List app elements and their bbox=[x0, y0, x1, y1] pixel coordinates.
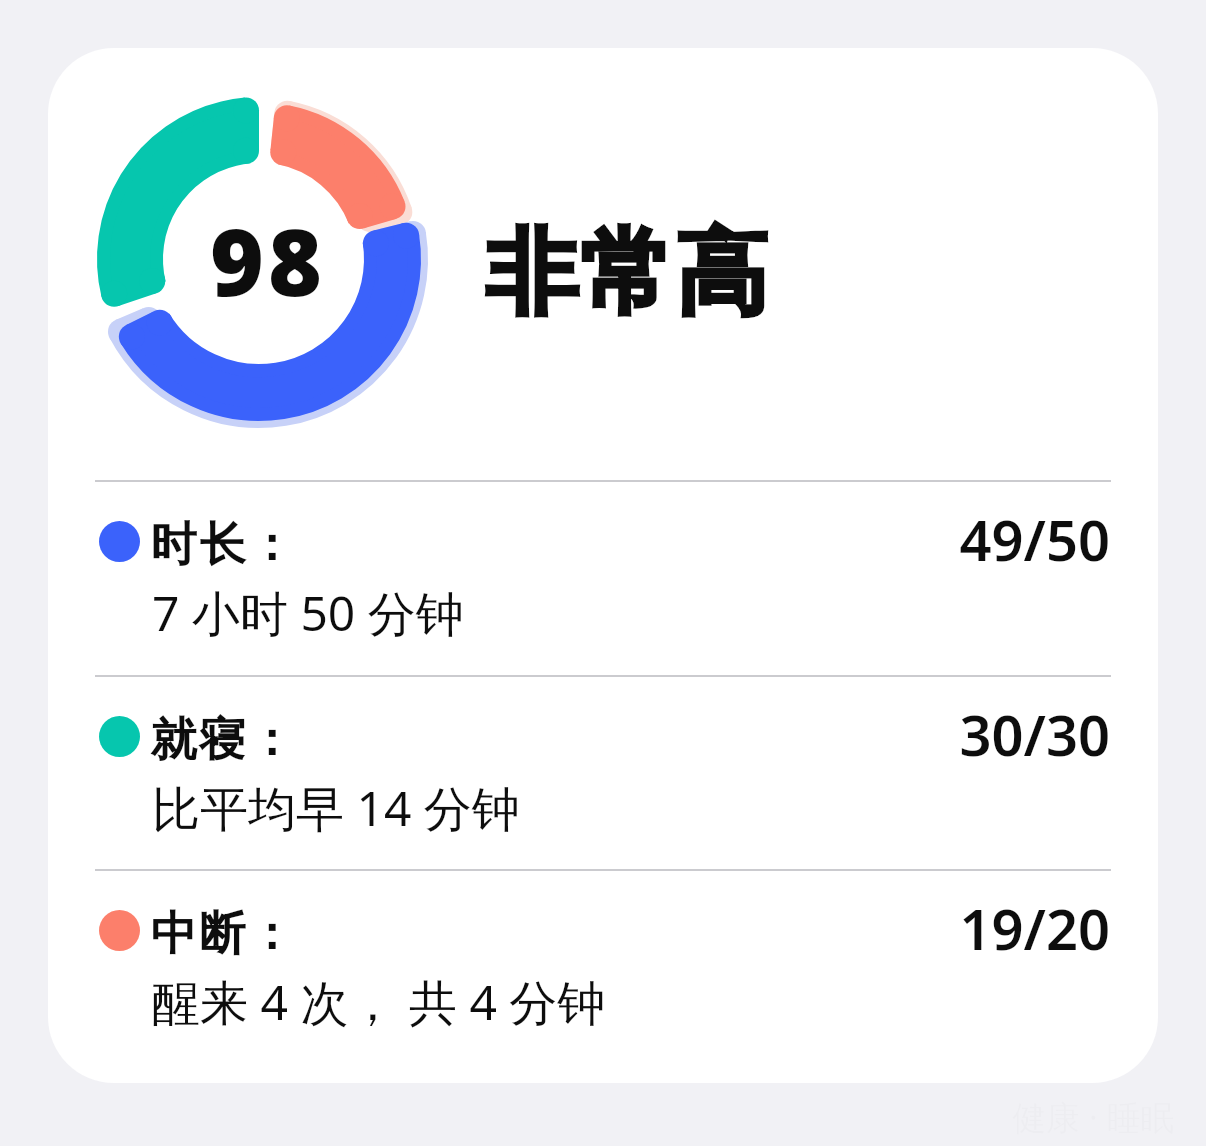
staticText: 98 bbox=[118, 198, 418, 318]
staticText: 中断： bbox=[149, 905, 296, 963]
staticText: 比平均早 14 分钟 bbox=[152, 775, 520, 841]
staticText: 30/30 bbox=[714, 696, 1110, 766]
staticText: 49/50 bbox=[714, 501, 1110, 571]
button[interactable]: Sleep score 98 ring chart bbox=[95, 95, 423, 423]
staticText: 醒来 4 次， 共 4 分钟 bbox=[152, 969, 606, 1035]
staticText: 7 小时 50 分钟 bbox=[152, 580, 464, 646]
button[interactable] bbox=[95, 873, 1111, 1061]
staticText: 时长： bbox=[149, 516, 296, 574]
button[interactable] bbox=[48, 48, 1158, 1083]
staticText: 19/20 bbox=[714, 890, 1110, 960]
button[interactable] bbox=[95, 679, 1111, 867]
staticText: 就寝： bbox=[149, 711, 296, 769]
button[interactable] bbox=[95, 484, 1111, 672]
staticText: 非常高 bbox=[484, 215, 769, 332]
